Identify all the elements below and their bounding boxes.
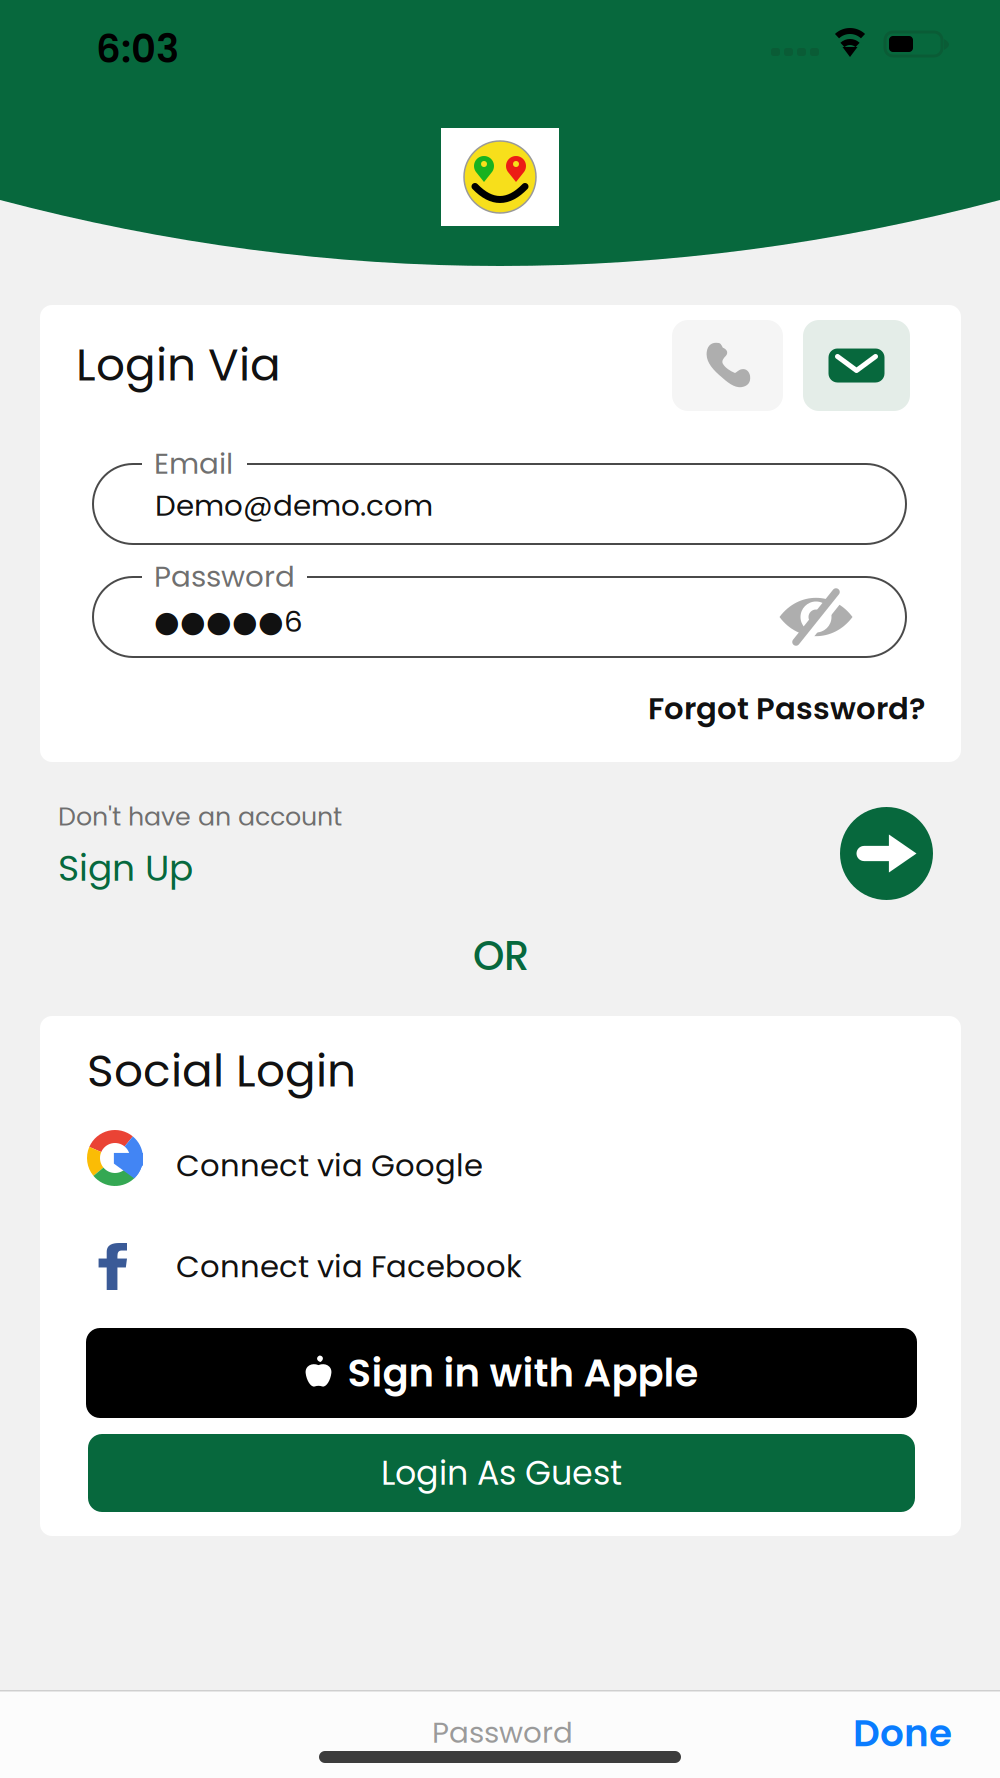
button[interactable]: Log in with phone number bbox=[672, 320, 783, 411]
staticText: Login Via bbox=[76, 333, 281, 396]
staticText: OR bbox=[473, 928, 529, 984]
button[interactable]: Login As Guest bbox=[88, 1434, 915, 1512]
button[interactable]: Connect via Google bbox=[40, 1126, 961, 1190]
staticText: Forgot Password? bbox=[648, 687, 925, 730]
button[interactable]: Connect via Facebook bbox=[40, 1227, 961, 1291]
staticText: Social Login bbox=[87, 1039, 356, 1102]
button[interactable]: Log in with email bbox=[803, 320, 910, 411]
staticText: Password bbox=[432, 1712, 573, 1753]
button[interactable]: Sign Up bbox=[58, 843, 193, 893]
staticText: Demo@demo.com bbox=[155, 485, 433, 526]
button[interactable]: Forgot Password? bbox=[648, 687, 925, 730]
staticText: 6:03 bbox=[96, 22, 179, 76]
button[interactable]: Sign in with Apple bbox=[86, 1328, 917, 1418]
staticText: Done bbox=[853, 1707, 952, 1759]
button[interactable]: Continue bbox=[831, 807, 942, 900]
staticText: Login As Guest bbox=[381, 1450, 622, 1496]
staticText: Sign in with Apple bbox=[347, 1346, 698, 1400]
staticText: Don't have an account bbox=[58, 799, 342, 834]
button[interactable]: Done bbox=[853, 1707, 952, 1759]
staticText: Connect via Facebook bbox=[176, 1245, 522, 1288]
staticText: Sign Up bbox=[58, 843, 193, 893]
staticText: Password bbox=[154, 556, 295, 597]
staticText: Connect via Google bbox=[176, 1144, 483, 1187]
staticText: Email bbox=[154, 443, 233, 484]
staticText: ●●●●●6 bbox=[154, 601, 303, 642]
button[interactable]: Show password bbox=[766, 577, 866, 657]
